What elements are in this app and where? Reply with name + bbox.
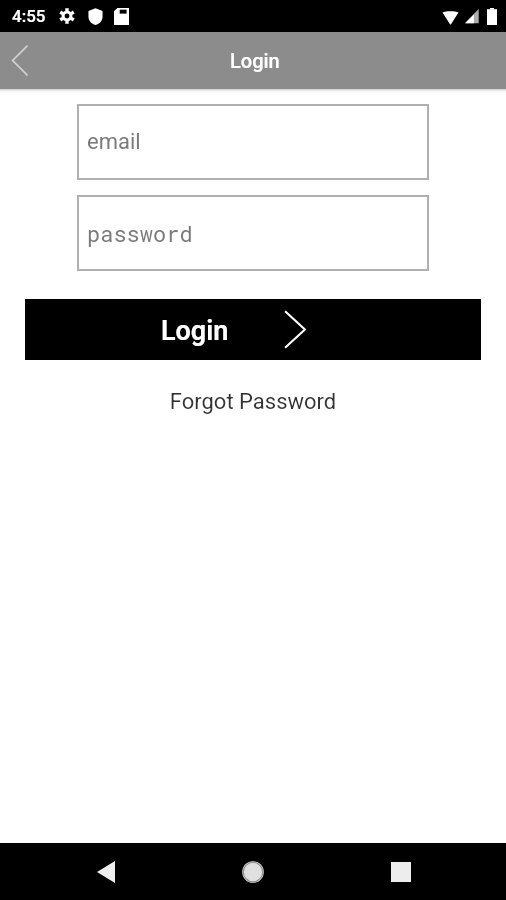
button[interactable]: Login — [25, 299, 481, 360]
staticText: Login — [161, 315, 229, 347]
button[interactable]: Forgot Password — [0, 385, 506, 419]
staticText: email — [87, 129, 141, 155]
button[interactable]: password — [77, 195, 429, 271]
button[interactable]: Back — [0, 32, 44, 89]
button[interactable]: Back — [78, 843, 134, 900]
staticText: Login — [230, 49, 280, 72]
staticText: password — [87, 219, 193, 248]
button[interactable]: email — [77, 104, 429, 180]
button[interactable]: Recents — [373, 843, 429, 900]
button[interactable]: Home — [225, 843, 281, 900]
staticText: 4:55 — [12, 6, 46, 26]
